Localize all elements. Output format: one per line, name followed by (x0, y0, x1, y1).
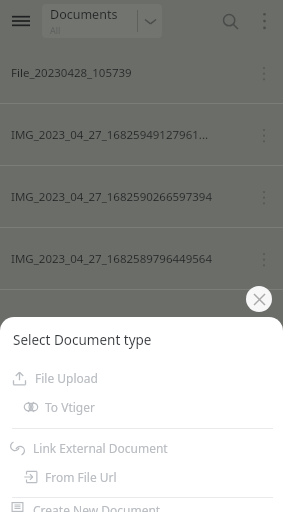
button[interactable]: Link External Document (0, 433, 283, 463)
button[interactable]: File Upload (0, 363, 283, 393)
button[interactable]: From File Url (0, 463, 283, 491)
button[interactable]: More options (249, 6, 279, 36)
button[interactable]: Create New Document (0, 502, 283, 512)
button[interactable]: Open navigation menu (0, 0, 42, 42)
staticText: IMG_2023_04_27_1682589796449564 (11, 251, 212, 267)
button[interactable]: To Vtiger (0, 393, 283, 421)
staticText: To Vtiger (45, 399, 95, 415)
staticText: Link External Document (33, 440, 168, 456)
button[interactable]: IMG_2023_04_27_1682589796449564 (0, 228, 283, 289)
staticText: From File Url (45, 469, 117, 485)
button[interactable]: Search (211, 2, 249, 40)
staticText: Create New Document (33, 502, 161, 512)
staticText: File_20230428_105739 (11, 65, 132, 81)
button[interactable]: File_20230428_105739 (0, 42, 283, 103)
staticText: All (50, 24, 61, 36)
staticText: File Upload (35, 370, 98, 386)
staticText: Documents (50, 6, 118, 23)
button[interactable]: IMG_2023_04_27_16825949127961... (0, 104, 283, 165)
staticText: IMG_2023_04_27_16825949127961... (11, 127, 209, 143)
staticText: IMG_2023_04_27_1682590266597394 (11, 189, 212, 205)
staticText: Select Document type (13, 331, 152, 349)
button[interactable]: Close (246, 286, 272, 312)
button[interactable]: Documents (42, 4, 162, 38)
button[interactable]: IMG_2023_04_27_1682590266597394 (0, 166, 283, 227)
